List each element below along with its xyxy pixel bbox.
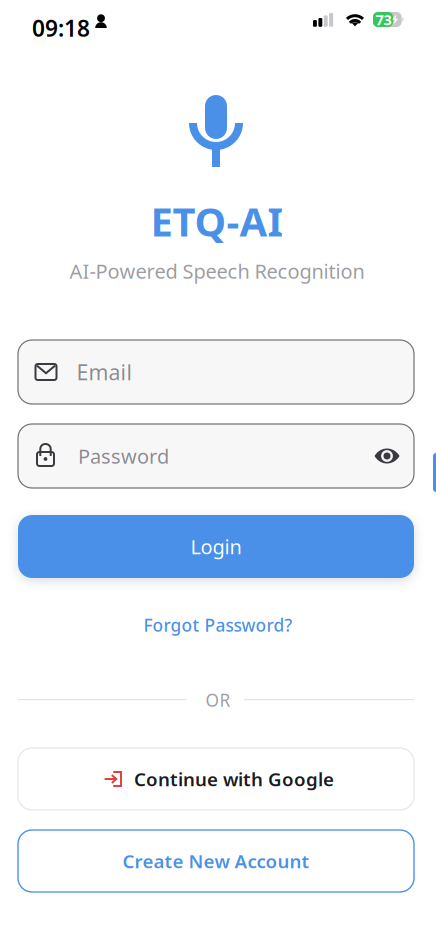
button[interactable]: Show password [361, 424, 413, 488]
button[interactable]: Continue with Google [18, 748, 414, 810]
staticText: AI-Powered Speech Recognition [69, 258, 364, 284]
staticText: Continue with Google [134, 767, 334, 791]
staticText: 09:18 [32, 13, 90, 43]
staticText: OR [205, 688, 230, 711]
staticText: Forgot Password? [143, 613, 292, 636]
staticText: Create New Account [122, 849, 309, 873]
staticText: ETQ-AI [150, 194, 283, 247]
button[interactable]: Login [18, 515, 414, 578]
button[interactable]: Forgot Password? [0, 612, 436, 638]
button[interactable]: Create New Account [18, 830, 414, 892]
staticText: Email [76, 358, 132, 386]
staticText: Password [78, 443, 169, 469]
staticText: 73 [375, 10, 391, 29]
staticText: Login [190, 533, 241, 560]
